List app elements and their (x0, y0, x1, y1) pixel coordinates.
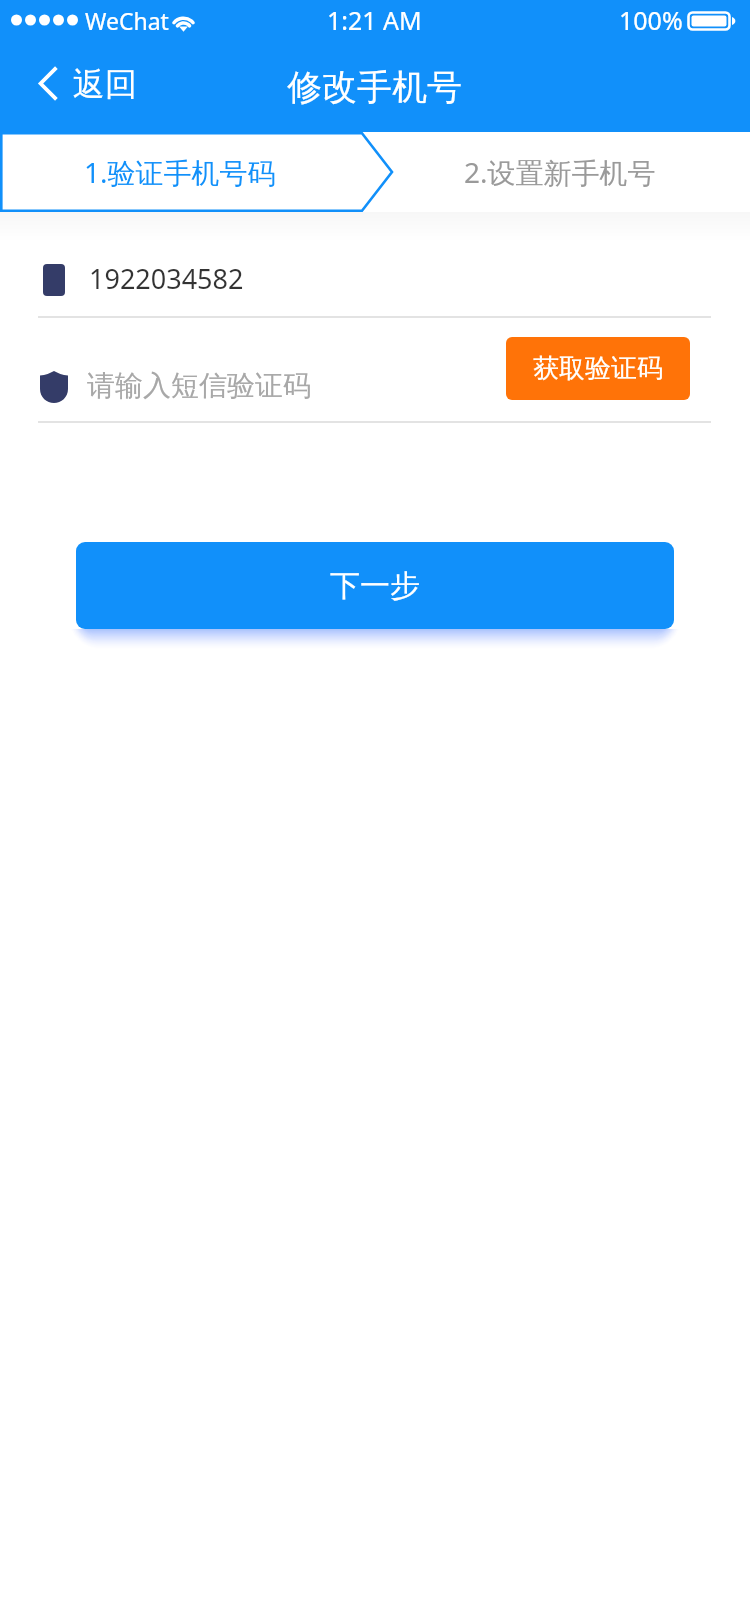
button[interactable]: 返回 (22, 49, 157, 113)
button[interactable]: 1.验证手机号码 (0, 132, 392, 212)
button[interactable]: 1922034582 (0, 212, 750, 317)
staticText: 100% (619, 3, 683, 37)
button[interactable]: 2.设置新手机号 (392, 132, 750, 212)
staticText: 1922034582 (89, 260, 244, 297)
staticText: 请输入短信验证码 (87, 368, 311, 403)
button[interactable]: 下一步 (76, 542, 674, 629)
staticText: 1.验证手机号码 (84, 153, 276, 191)
staticText: WeChat (85, 5, 169, 36)
button[interactable]: 获取验证码 (506, 337, 690, 400)
staticText: 2.设置新手机号 (464, 153, 656, 191)
staticText: 返回 (73, 64, 137, 104)
staticText: 获取验证码 (533, 352, 663, 385)
button[interactable]: 请输入短信验证码 (0, 317, 750, 421)
staticText: 1:21 AM (327, 3, 422, 37)
staticText: 下一步 (330, 567, 420, 605)
staticText: 修改手机号 (287, 65, 462, 109)
